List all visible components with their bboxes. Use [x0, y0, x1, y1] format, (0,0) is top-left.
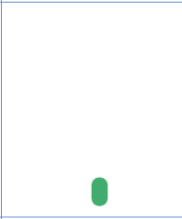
button[interactable]: Action — [91, 177, 108, 206]
